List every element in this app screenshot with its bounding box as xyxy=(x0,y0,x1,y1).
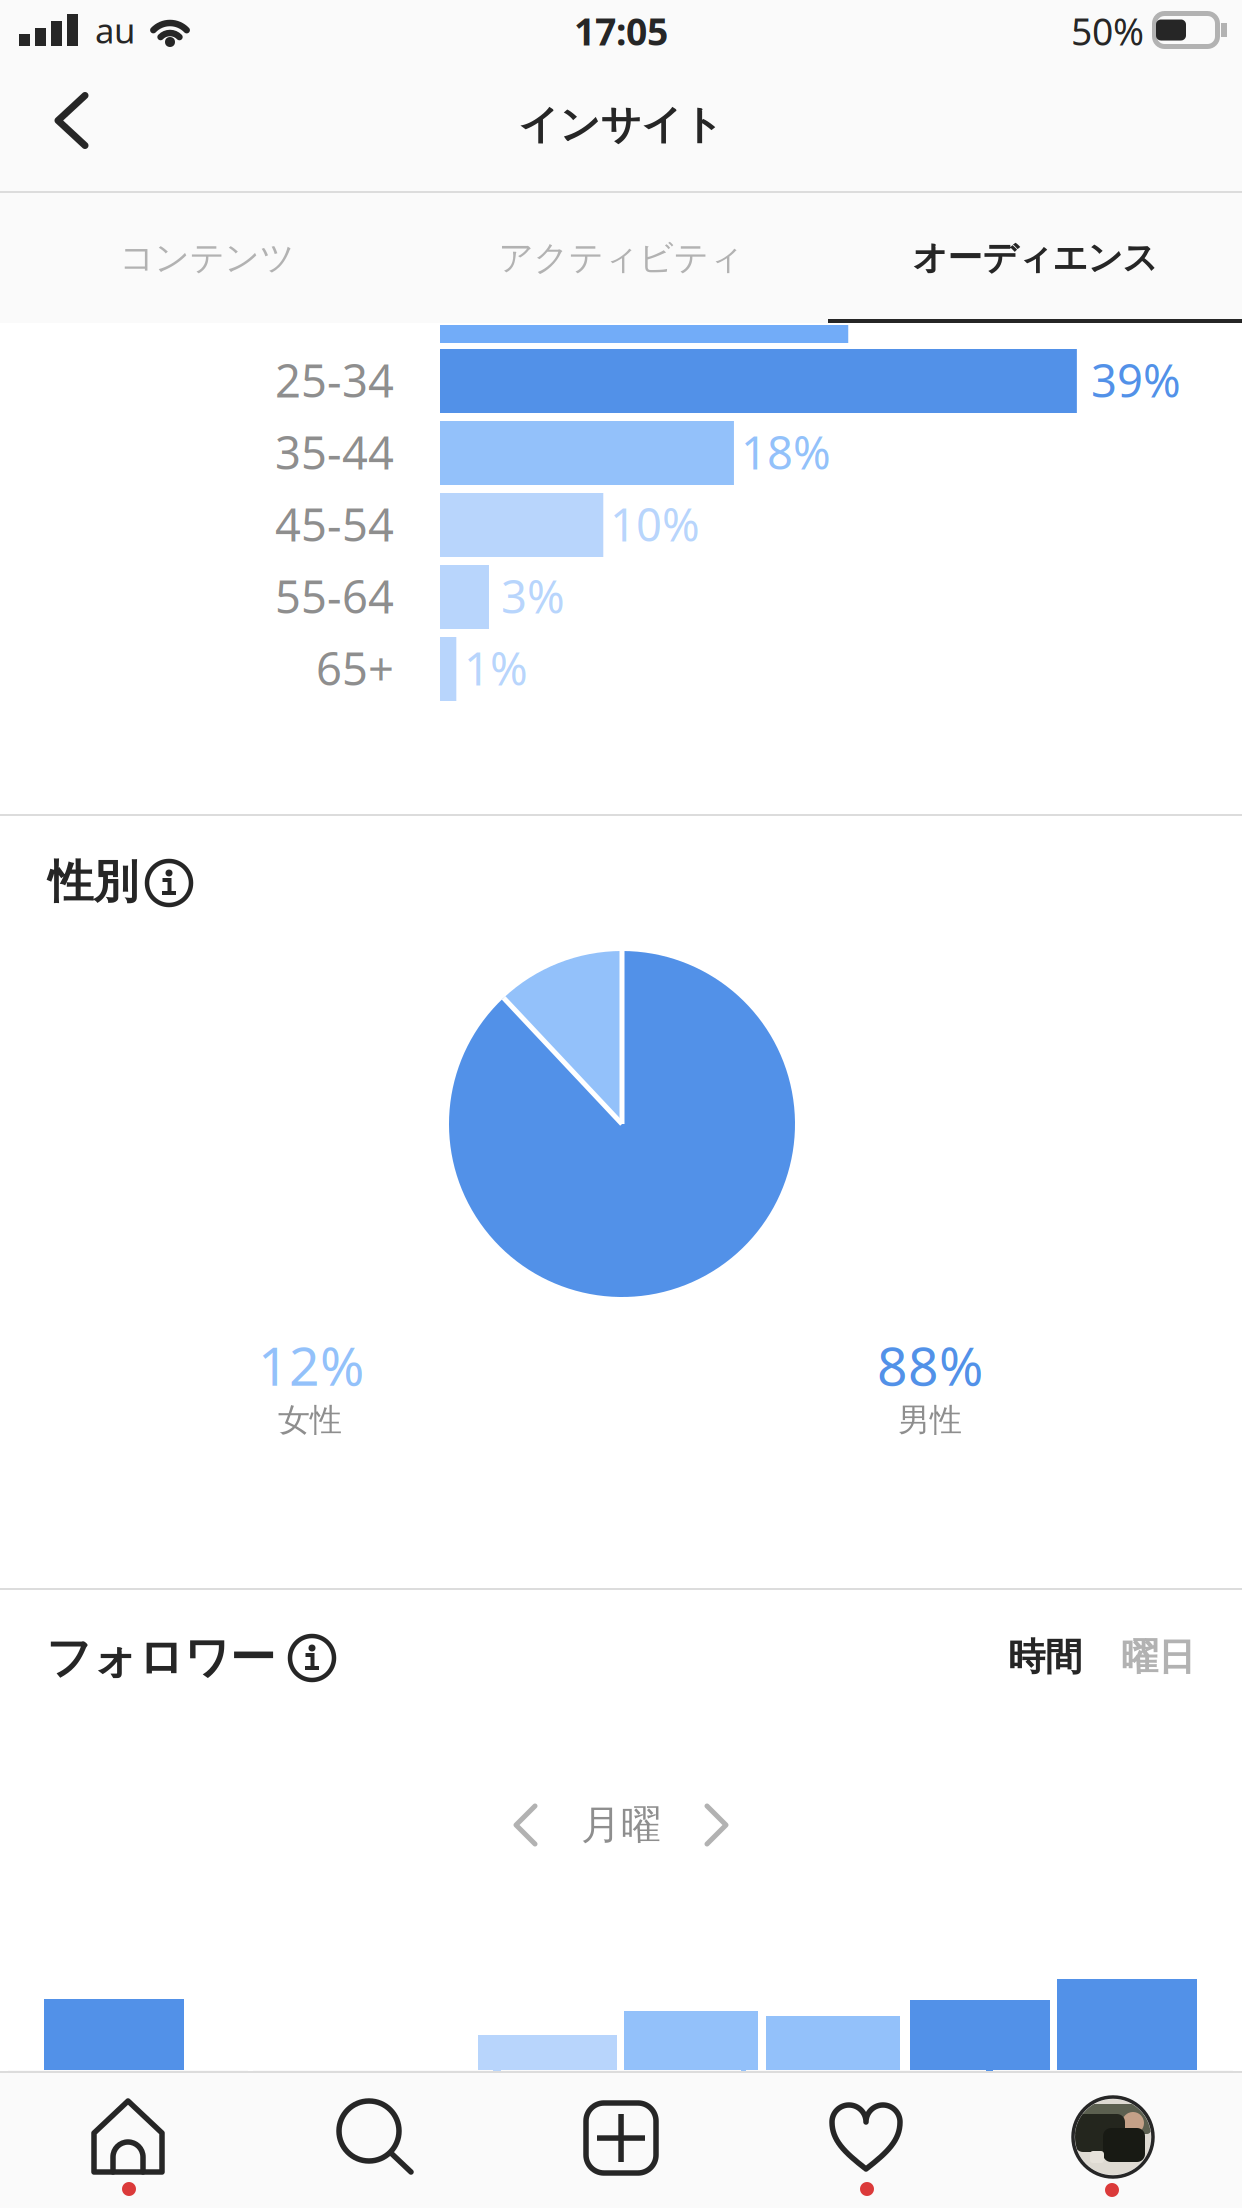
staticText: 18% xyxy=(741,421,831,483)
button[interactable]: コンテンツ xyxy=(0,193,414,323)
staticText: 45-54 xyxy=(275,493,394,555)
staticText: コンテンツ xyxy=(119,236,294,280)
staticText: 女性 xyxy=(278,1400,342,1440)
button[interactable]: 性別について xyxy=(132,846,206,920)
button[interactable]: ホーム xyxy=(8,2070,248,2206)
staticText: 男性 xyxy=(898,1400,962,1440)
staticText: 性別 xyxy=(48,853,138,910)
staticText: 39% xyxy=(1091,349,1181,411)
staticText: 55-64 xyxy=(275,565,394,627)
staticText: 88% xyxy=(877,1329,983,1401)
staticText: 曜日 xyxy=(1121,1633,1195,1680)
staticText: 時間 xyxy=(1008,1633,1082,1680)
staticText: 10% xyxy=(610,493,700,555)
button[interactable]: プロフィール xyxy=(993,2070,1233,2206)
staticText: 65+ xyxy=(316,637,394,699)
staticText: 25-34 xyxy=(275,349,394,411)
staticText: 17:05 xyxy=(574,6,668,56)
staticText: 35-44 xyxy=(275,421,394,483)
button[interactable]: 次の曜日 xyxy=(676,1785,756,1865)
staticText: 12% xyxy=(258,1329,364,1401)
button[interactable]: 戻る xyxy=(0,69,150,192)
button[interactable]: 検索 xyxy=(253,2070,493,2206)
staticText: アクティビティ xyxy=(498,236,743,280)
staticText: 3% xyxy=(501,565,565,627)
button[interactable]: フォロワーについて xyxy=(275,1621,349,1695)
staticText: フォロワー xyxy=(46,1629,275,1686)
staticText: オーディエンス xyxy=(912,236,1157,280)
button[interactable]: アクティビティ xyxy=(414,193,828,323)
staticText: インサイト xyxy=(518,100,723,150)
staticText: 1% xyxy=(464,637,528,699)
button[interactable]: オーディエンス xyxy=(828,193,1242,323)
button[interactable]: 新規投稿 xyxy=(501,2070,741,2206)
staticText: 月曜 xyxy=(581,1800,661,1850)
staticText: au xyxy=(95,6,135,54)
button[interactable]: アクティビティ xyxy=(746,2070,986,2206)
staticText: 50% xyxy=(1071,6,1144,56)
button[interactable]: 曜日 xyxy=(1108,1617,1208,1697)
button[interactable]: 時間 xyxy=(995,1617,1095,1697)
button[interactable]: 前の曜日 xyxy=(486,1785,566,1865)
